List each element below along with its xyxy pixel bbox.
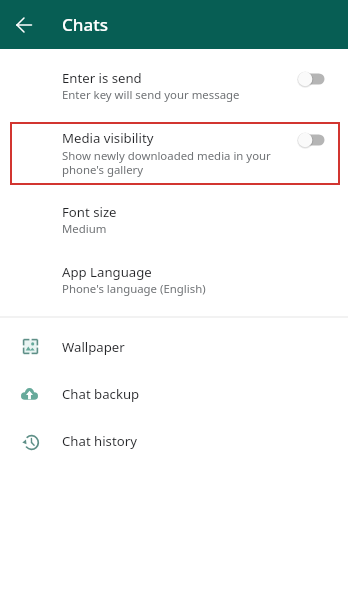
button[interactable]: Back [9,10,39,40]
button[interactable] [0,324,348,370]
staticText: Wallpaper [62,338,125,356]
button[interactable]: Media visibility, off [291,127,331,153]
staticText: Chat backup [62,385,140,403]
button[interactable] [0,190,348,242]
button[interactable] [0,250,348,302]
staticText: Show newly downloaded media in your phon… [62,148,271,177]
staticText: App Language [62,263,152,281]
button[interactable] [0,56,348,108]
button[interactable] [0,122,348,185]
staticText: Chats [62,13,108,36]
staticText: Phone's language (English) [62,281,206,297]
staticText: Media visibility [62,129,154,147]
button[interactable] [0,419,348,465]
staticText: Enter is send [62,69,142,87]
button[interactable]: Enter is send, off [291,66,331,92]
staticText: Font size [62,203,117,221]
button[interactable] [0,372,348,418]
staticText: Medium [62,221,107,237]
staticText: Enter key will send your message [62,87,240,103]
staticText: Chat history [62,432,137,450]
